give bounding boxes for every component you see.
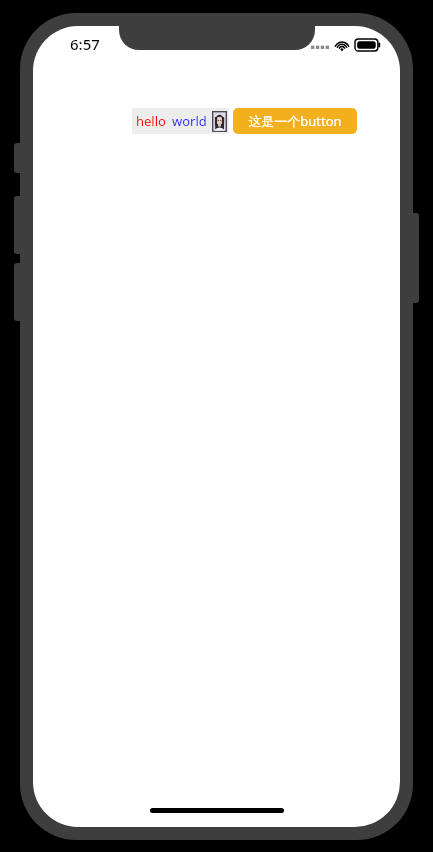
- staticText: hello: [136, 112, 166, 130]
- staticText: world: [172, 112, 207, 130]
- other: Power: [411, 213, 419, 303]
- other: Mute switch: [14, 143, 22, 173]
- button[interactable]: hello: [136, 108, 227, 134]
- other: Volume down: [14, 263, 22, 321]
- button[interactable]: 这是一个button: [233, 108, 357, 134]
- other: Volume up: [14, 196, 22, 254]
- staticText: 这是一个button: [248, 112, 342, 130]
- staticText: 6:57: [70, 34, 100, 54]
- other: Avatar image: [212, 111, 227, 132]
